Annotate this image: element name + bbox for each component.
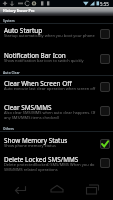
staticText: Auto Startup [4,26,43,35]
staticText: Auto Clear [3,71,20,75]
staticText: System [3,19,15,23]
staticText: Show phone memory status [4,143,56,148]
button[interactable]: Clear When Screen Off [0,76,113,101]
staticText: Startup automatically when you boot your… [4,33,95,38]
button[interactable]: Checked [100,139,110,149]
button[interactable]: Auto Startup [0,24,113,48]
button[interactable]: Notification Bar Icon [0,48,113,68]
staticText: Others [3,127,14,131]
button[interactable]: Clear SMS/MMS [0,101,113,122]
button[interactable]: Recents [78,179,106,199]
staticText: Delete Locked SMS/MMS [4,155,79,164]
staticText: Also clear SMS/MMS when auto clear happe… [4,110,97,120]
button[interactable]: Unchecked [100,29,110,39]
staticText: Clear When Screen Off [4,79,72,88]
button[interactable]: Unchecked [100,82,110,92]
staticText: Notification Bar Icon [4,51,66,60]
staticText: 5:55 [100,1,109,7]
button[interactable]: Unchecked [100,106,110,116]
staticText: Auto execute last clear operation when s… [4,86,96,91]
staticText: Delete protected(locked) SMS/MMS When yo… [4,162,97,172]
button[interactable]: Unchecked [100,158,110,168]
staticText: History Eraser Pro [3,8,35,13]
button[interactable]: Show Memory Status [0,132,113,151]
staticText: Show Memory Status [4,136,68,145]
staticText: Clear SMS/MMS [4,103,52,112]
button[interactable]: Home [43,179,71,199]
staticText: Show notification bar icon to switch qui… [4,58,84,63]
button[interactable]: Unchecked [100,54,110,64]
button[interactable]: Back [7,179,35,199]
button[interactable]: Delete Locked SMS/MMS [0,151,113,177]
